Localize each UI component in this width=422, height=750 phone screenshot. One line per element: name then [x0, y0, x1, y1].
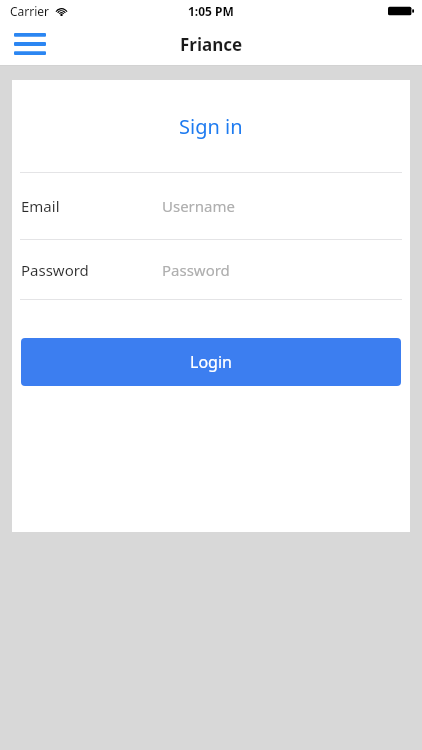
staticText: Login — [190, 351, 232, 373]
staticText: Friance — [180, 33, 243, 56]
button[interactable]: Menu — [8, 24, 52, 64]
button[interactable]: Password — [12, 240, 410, 299]
staticText: Password — [162, 260, 230, 280]
button[interactable]: Login — [21, 338, 401, 386]
staticText: 1:05 PM — [188, 3, 234, 19]
button[interactable]: Email — [12, 173, 410, 239]
staticText: Carrier — [10, 3, 50, 19]
staticText: Username — [162, 196, 235, 216]
staticText: Sign in — [179, 113, 243, 140]
staticText: Email — [21, 196, 60, 216]
staticText: Password — [21, 260, 89, 280]
